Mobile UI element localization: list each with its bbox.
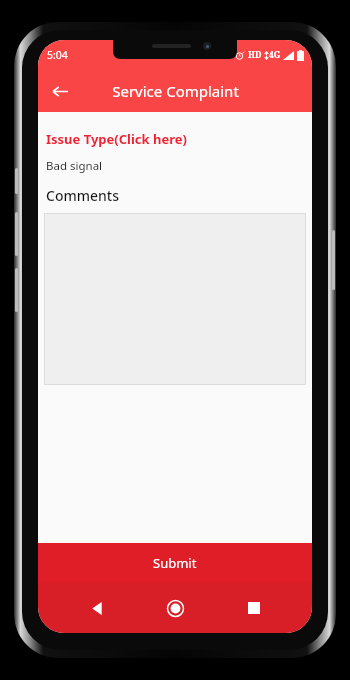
- staticText: Bad signal: [46, 158, 103, 174]
- button[interactable]: Home: [155, 588, 195, 628]
- staticText: Comments: [46, 186, 119, 205]
- button[interactable]: Recent apps: [234, 588, 274, 628]
- staticText: Submit: [153, 554, 197, 572]
- button[interactable]: Back: [77, 588, 117, 628]
- button[interactable]: Back: [46, 77, 74, 105]
- button[interactable]: Submit: [38, 543, 312, 583]
- button[interactable]: Issue Type(Click here): [44, 128, 189, 150]
- staticText: 5:04: [47, 48, 68, 62]
- staticText: 4G: [269, 49, 281, 61]
- staticText: HD: [248, 49, 262, 61]
- staticText: Service Complaint: [112, 81, 239, 101]
